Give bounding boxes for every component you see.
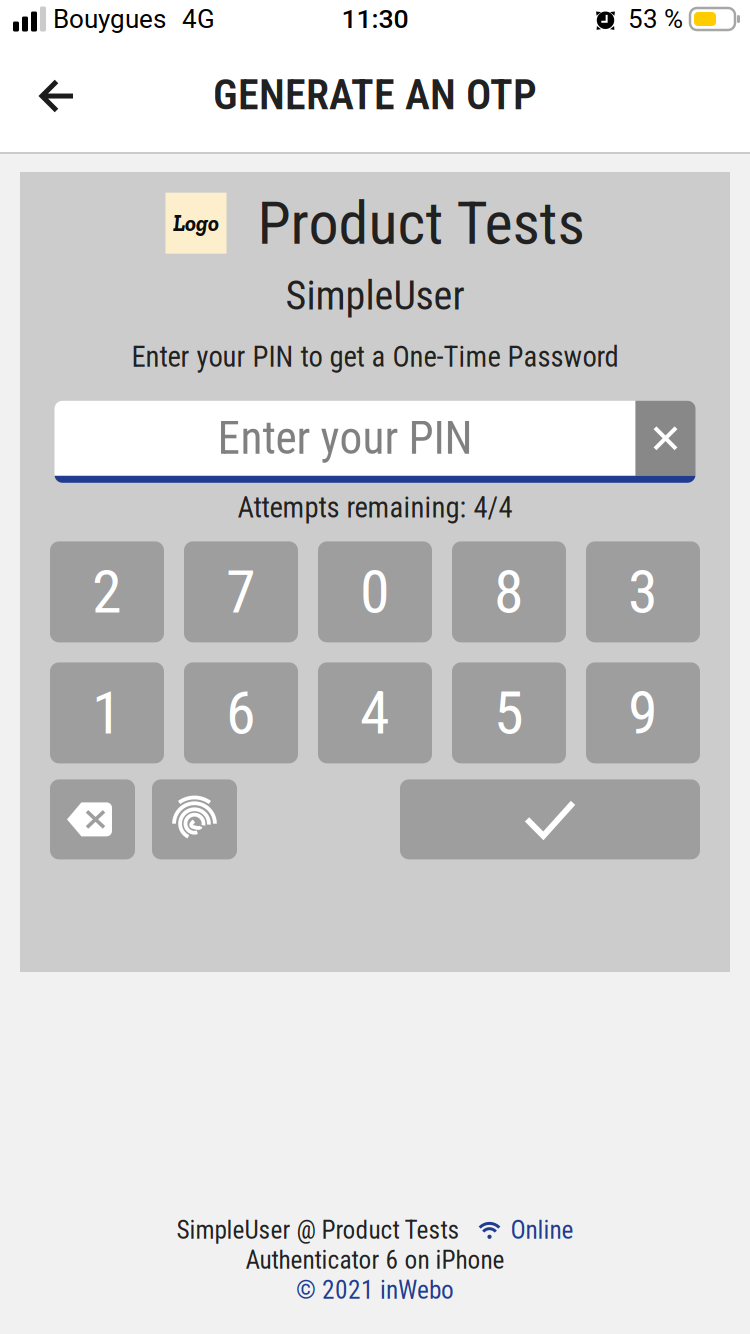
button[interactable]: 2 [50, 541, 164, 642]
button[interactable]: Clear [635, 401, 695, 476]
staticText: 4 [360, 678, 390, 748]
staticText: 7 [226, 557, 256, 627]
staticText: SimpleUser @ Product Tests [176, 1215, 459, 1245]
staticText: Online [510, 1215, 573, 1245]
staticText: 5 [494, 678, 524, 748]
staticText: 4G [182, 4, 215, 34]
button[interactable]: 4 [318, 662, 432, 763]
staticText: SimpleUser [285, 272, 464, 319]
button[interactable]: Delete [50, 779, 135, 859]
button[interactable]: 9 [586, 662, 700, 763]
staticText: Attempts remaining: 4/4 [237, 491, 512, 524]
button[interactable]: 1 [50, 662, 164, 763]
button[interactable]: 0 [318, 541, 432, 642]
staticText: Bouygues [53, 4, 166, 34]
staticText: 9 [628, 678, 658, 748]
staticText: Enter your PIN [217, 412, 472, 465]
staticText: 53 % [628, 4, 683, 34]
staticText: Product Tests [257, 188, 584, 258]
staticText: 1 [92, 678, 122, 748]
staticText: 6 [226, 678, 256, 748]
staticText: GENERATE AN OTP [213, 70, 537, 120]
button[interactable]: 8 [452, 541, 566, 642]
staticText: Enter your PIN to get a One-Time Passwor… [131, 340, 618, 374]
button[interactable]: 7 [184, 541, 298, 642]
button[interactable]: Use fingerprint [152, 779, 237, 859]
staticText: 11:30 [341, 3, 408, 35]
staticText: Authenticator 6 on iPhone [245, 1245, 504, 1275]
button[interactable]: 3 [586, 541, 700, 642]
staticText: 8 [494, 557, 524, 627]
button[interactable]: Validate [400, 779, 700, 859]
staticText: 3 [628, 557, 658, 627]
staticText: 0 [360, 557, 390, 627]
staticText: 2 [92, 557, 122, 627]
button[interactable]: 5 [452, 662, 566, 763]
button[interactable]: Back [0, 55, 94, 134]
button[interactable]: 6 [184, 662, 298, 763]
staticText: Logo [173, 210, 219, 237]
staticText: © 2021 inWebo [296, 1275, 454, 1305]
